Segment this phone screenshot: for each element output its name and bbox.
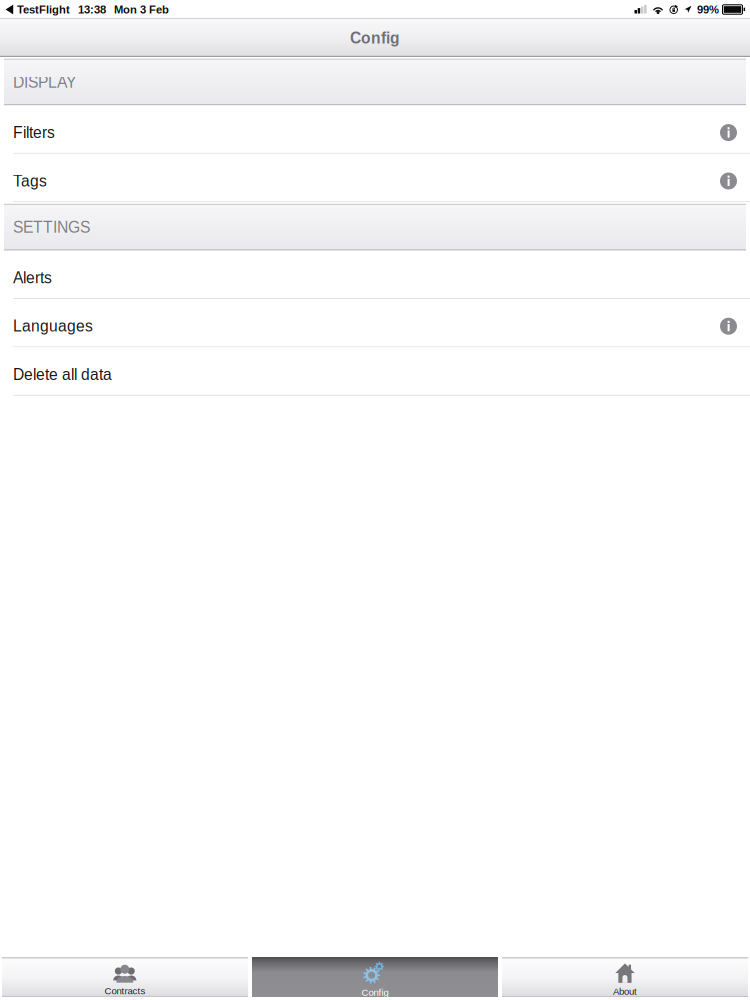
staticText: SETTINGS bbox=[13, 219, 90, 236]
staticText: Filters bbox=[13, 124, 55, 141]
staticText: About bbox=[613, 986, 637, 997]
button[interactable]: Languages bbox=[0, 299, 750, 347]
button[interactable]: Filters bbox=[0, 105, 750, 154]
staticText: DISPLAY bbox=[13, 73, 76, 91]
staticText: 99% bbox=[697, 3, 719, 16]
staticText: TestFlight bbox=[17, 3, 70, 16]
staticText: Config bbox=[361, 987, 388, 998]
staticText: Alerts bbox=[13, 269, 52, 286]
staticText: Tags bbox=[13, 172, 47, 190]
staticText: Delete all data bbox=[13, 366, 112, 383]
button[interactable]: Contracts bbox=[2, 957, 248, 997]
staticText: 13:38 bbox=[78, 3, 106, 16]
staticText: Languages bbox=[13, 317, 93, 335]
button[interactable]: Config bbox=[252, 957, 498, 997]
staticText: Mon 3 Feb bbox=[114, 3, 169, 16]
button[interactable]: Delete all data bbox=[0, 347, 750, 396]
staticText: Config bbox=[350, 29, 400, 47]
staticText: Contracts bbox=[104, 986, 145, 996]
button[interactable]: About bbox=[502, 957, 748, 997]
button[interactable]: Alerts bbox=[0, 251, 750, 299]
button[interactable]: Tags bbox=[0, 154, 750, 202]
